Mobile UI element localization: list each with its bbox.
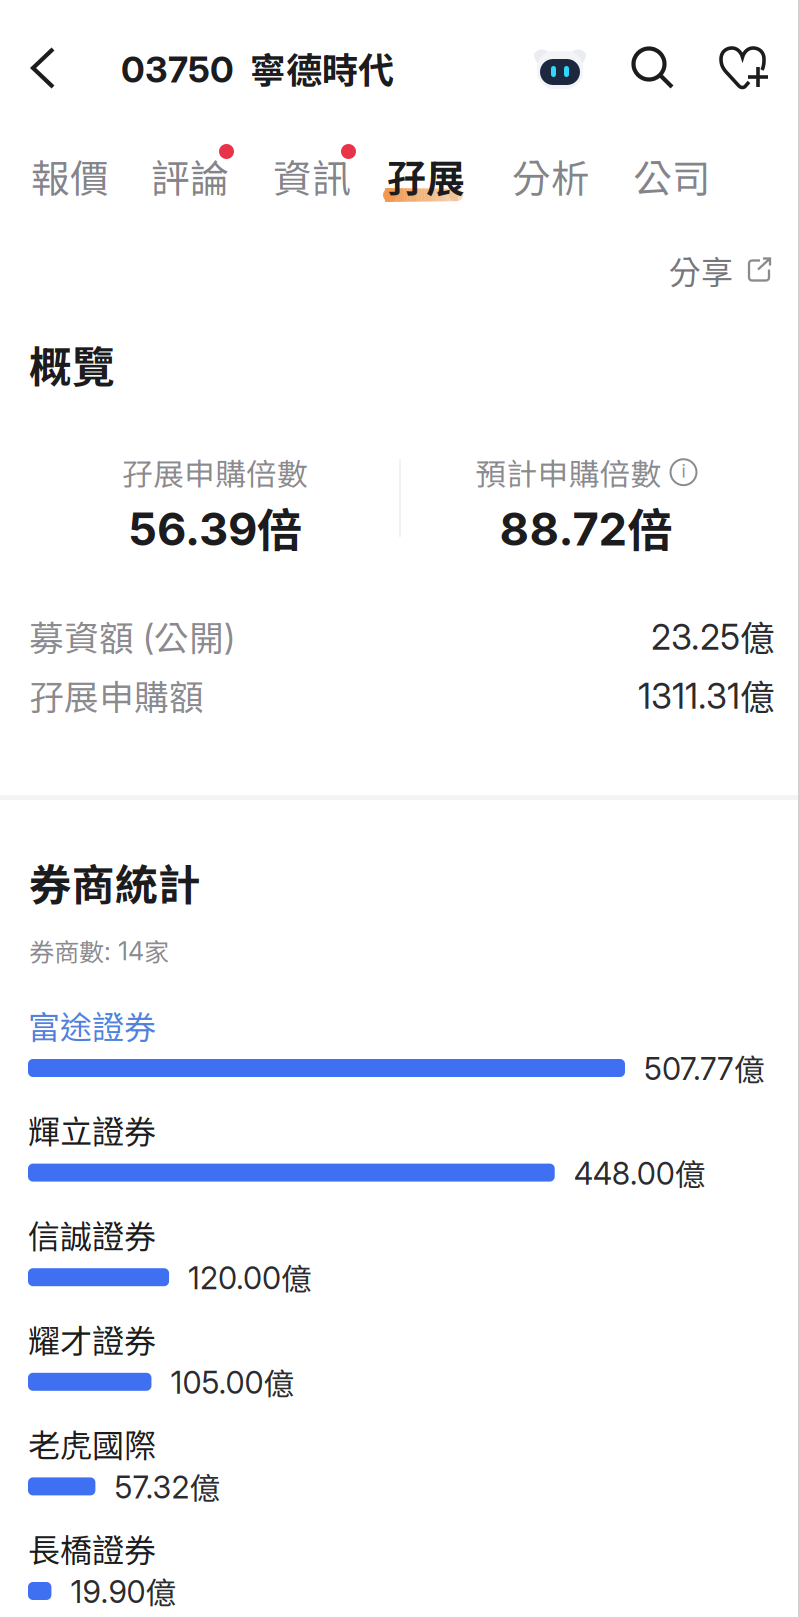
staticText: 448.00億 (574, 1150, 706, 1195)
staticText: 資訊 (273, 148, 351, 204)
button[interactable]: 03750 寧德時代 (121, 22, 394, 114)
staticText: 評論 (151, 148, 229, 204)
button[interactable]: AI assistant (523, 22, 597, 114)
staticText: 03750 寧德時代 (121, 42, 394, 94)
staticText: 105.00億 (170, 1360, 294, 1404)
staticText: 1311.31億 (638, 670, 775, 720)
staticText: 23.25億 (651, 611, 775, 661)
staticText: 報價 (31, 148, 109, 204)
button[interactable]: Search (617, 22, 689, 114)
button[interactable]: Add to watchlist (706, 22, 782, 114)
staticText: 孖展申購倍數 (122, 450, 308, 494)
staticText: 88.72倍 (499, 494, 672, 560)
staticText: 券商數: 14家 (29, 932, 169, 969)
button[interactable]: 報價 (31, 142, 151, 218)
staticText: 孖展申購額 (29, 670, 204, 720)
staticText: 預計申購倍數 (475, 450, 661, 494)
staticText: 分享 (669, 247, 733, 293)
staticText: 507.77億 (644, 1046, 765, 1090)
staticText: 概覽 (29, 333, 115, 395)
staticText: 券商統計 (29, 851, 201, 913)
button[interactable]: 分享 (669, 235, 800, 305)
staticText: 公司 (633, 148, 711, 204)
button[interactable]: 孖展 (387, 142, 512, 218)
staticText: 長橋證券 (28, 1525, 156, 1571)
staticText: 19.90億 (70, 1569, 176, 1613)
staticText: 120.00億 (188, 1255, 312, 1299)
staticText: i (681, 461, 685, 482)
staticText: 孖展 (387, 148, 465, 204)
button[interactable]: 公司 (633, 142, 743, 218)
staticText: 募資額 (公開) (29, 611, 235, 661)
button[interactable]: Back (0, 22, 86, 114)
staticText: 56.39倍 (128, 494, 302, 560)
button[interactable]: 分析 (512, 142, 633, 218)
staticText: 耀才證券 (28, 1316, 156, 1362)
staticText: 老虎國際 (28, 1420, 156, 1466)
staticText: 信誠證券 (28, 1211, 156, 1257)
staticText: 分析 (512, 148, 590, 204)
staticText: 57.32億 (114, 1464, 220, 1509)
staticText: 富途證券 (28, 1002, 156, 1048)
button[interactable]: 資訊 (273, 142, 387, 218)
button[interactable]: 評論 (151, 142, 273, 218)
staticText: 輝立證券 (28, 1106, 156, 1153)
